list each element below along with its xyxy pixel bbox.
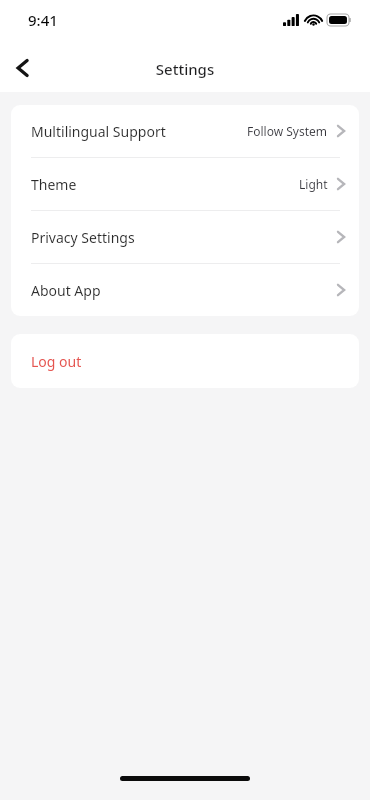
button[interactable]: Privacy Settings	[11, 211, 359, 263]
staticText: Follow System	[247, 123, 328, 139]
button[interactable]: Multilingual Support	[11, 105, 359, 157]
staticText: Privacy Settings	[31, 228, 135, 247]
button[interactable]: Back	[0, 46, 44, 90]
staticText: Light	[299, 176, 328, 192]
staticText: Settings	[0, 59, 370, 79]
staticText: 9:41	[28, 10, 58, 30]
button[interactable]: Log out	[11, 334, 359, 388]
button[interactable]: About App	[11, 264, 359, 316]
staticText: About App	[31, 281, 101, 300]
staticText: Multilingual Support	[31, 122, 166, 141]
button[interactable]: Theme	[11, 158, 359, 210]
staticText: Log out	[31, 352, 82, 371]
staticText: Theme	[31, 175, 77, 194]
